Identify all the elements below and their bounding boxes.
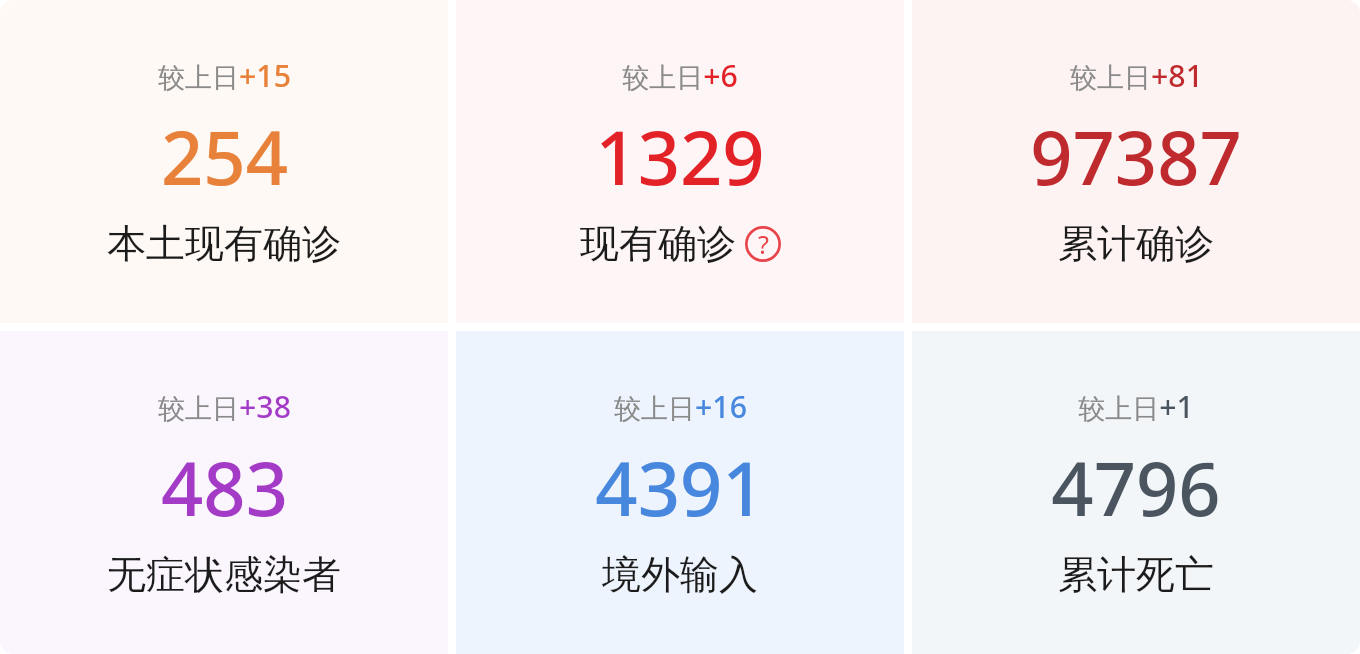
button[interactable]: 较上日+15 xyxy=(0,0,448,323)
staticText: 较上日+1 xyxy=(1078,386,1194,427)
staticText: 累计确诊 xyxy=(1058,219,1214,268)
button[interactable]: 较上日+1 xyxy=(912,331,1360,654)
staticText: 现有确诊 xyxy=(580,219,736,268)
staticText: 4391 xyxy=(595,437,765,538)
button[interactable]: 较上日+16 xyxy=(456,331,904,654)
staticText: 1329 xyxy=(595,106,765,207)
staticText: 累计死亡 xyxy=(1058,550,1214,599)
staticText: 较上日+38 xyxy=(158,386,291,427)
button[interactable]: 说明 xyxy=(745,226,781,262)
staticText: 较上日+15 xyxy=(158,55,291,96)
staticText: ? xyxy=(758,227,769,261)
staticText: 254 xyxy=(161,106,288,207)
staticText: 97387 xyxy=(1030,106,1242,207)
button[interactable]: 较上日+81 xyxy=(912,0,1360,323)
staticText: 较上日+16 xyxy=(614,386,747,427)
staticText: 境外输入 xyxy=(602,550,758,599)
staticText: 本土现有确诊 xyxy=(107,219,341,268)
staticText: 较上日+81 xyxy=(1070,55,1203,96)
staticText: 无症状感染者 xyxy=(107,550,341,599)
button[interactable]: 较上日+38 xyxy=(0,331,448,654)
staticText: 4796 xyxy=(1051,437,1221,538)
button[interactable]: 较上日+6 xyxy=(456,0,904,323)
staticText: 较上日+6 xyxy=(622,55,738,96)
staticText: 483 xyxy=(161,437,288,538)
